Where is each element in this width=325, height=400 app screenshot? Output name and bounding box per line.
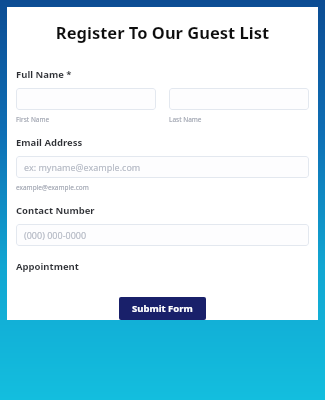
staticText: (000) 000-0000 xyxy=(24,229,87,241)
button[interactable]: Submit Form xyxy=(119,297,206,320)
button[interactable] xyxy=(169,88,309,110)
button[interactable] xyxy=(16,88,156,110)
staticText: ex: myname@example.com xyxy=(24,161,141,173)
staticText: example@example.com xyxy=(16,183,89,192)
staticText: Email Address xyxy=(16,136,83,149)
staticText: Contact Number xyxy=(16,204,95,217)
button[interactable]: ex: myname@example.com xyxy=(16,156,309,178)
staticText: Last Name xyxy=(169,115,202,124)
button[interactable]: (000) 000-0000 xyxy=(16,224,309,246)
staticText: Register To Our Guest List xyxy=(7,21,318,43)
staticText: Submit Form xyxy=(132,302,193,315)
staticText: First Name xyxy=(16,115,50,124)
staticText: Appointment xyxy=(16,260,79,273)
staticText: Full Name * xyxy=(16,68,72,81)
